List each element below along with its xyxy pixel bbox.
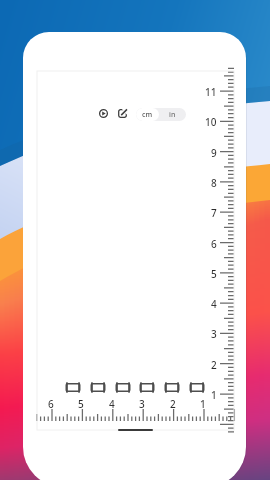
staticText: 1 <box>211 388 217 400</box>
staticText: 6 <box>211 237 217 249</box>
staticText: 7 <box>211 206 217 218</box>
staticText: cm <box>142 110 153 120</box>
button[interactable]: Start measuring <box>95 105 111 121</box>
staticText: 4 <box>109 397 115 409</box>
staticText: 3 <box>139 397 145 409</box>
staticText: in <box>169 110 176 120</box>
staticText: 6 <box>48 397 54 409</box>
staticText: 5 <box>78 397 84 409</box>
staticText: 10 <box>205 115 217 127</box>
button[interactable]: Object preset 3 <box>115 379 131 393</box>
staticText: 5 <box>211 267 217 279</box>
button[interactable]: Object preset 1 <box>65 379 81 393</box>
button[interactable]: cm <box>136 108 159 121</box>
button[interactable]: Object preset 5 <box>164 379 180 393</box>
button[interactable]: Edit <box>114 105 130 121</box>
button[interactable]: Object preset 6 <box>189 379 205 393</box>
staticText: 9 <box>211 146 217 158</box>
button[interactable]: Object preset 4 <box>139 379 155 393</box>
staticText: 11 <box>205 85 217 97</box>
button[interactable]: in <box>159 108 186 121</box>
staticText: 2 <box>170 397 176 409</box>
staticText: 3 <box>211 327 217 339</box>
button[interactable]: Object preset 2 <box>90 379 106 393</box>
staticText: 2 <box>211 358 217 370</box>
staticText: 8 <box>211 176 217 188</box>
staticText: 4 <box>211 297 217 309</box>
staticText: 1 <box>200 397 206 409</box>
